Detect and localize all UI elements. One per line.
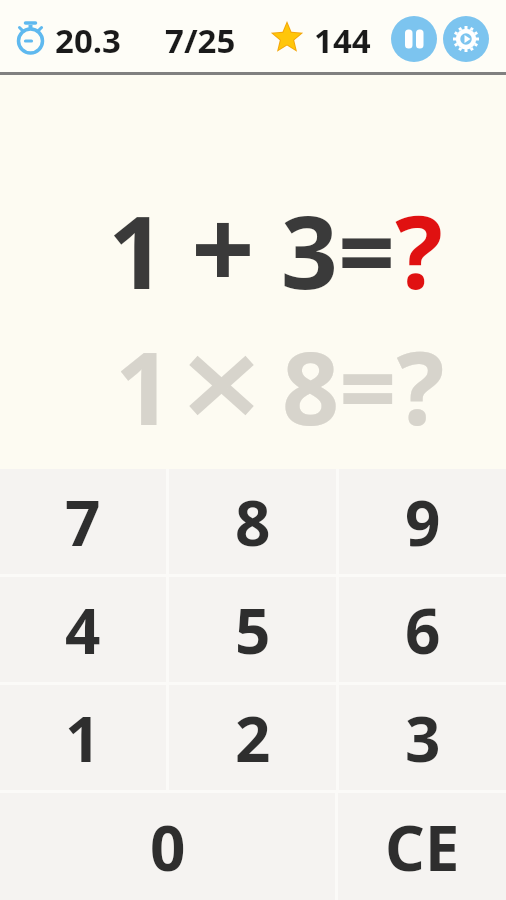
staticText: 7 [65, 480, 101, 564]
button[interactable]: CE [338, 793, 506, 900]
button[interactable]: 3 [339, 685, 506, 790]
button[interactable]: 2 [169, 685, 336, 790]
staticText: 9 [405, 480, 441, 564]
staticText: CE [385, 805, 460, 889]
staticText: 2 [235, 696, 271, 780]
staticText: 4 [65, 588, 101, 672]
staticText: 8=? [282, 318, 445, 454]
button[interactable] [443, 16, 489, 62]
button[interactable] [391, 16, 437, 62]
button[interactable]: 9 [339, 469, 506, 574]
staticText: 1 [115, 318, 173, 454]
staticText: 7/25 [165, 18, 236, 63]
staticText: 8 [235, 480, 271, 564]
button[interactable]: 6 [339, 577, 506, 682]
staticText: 1 [65, 696, 101, 780]
staticText: 0 [150, 805, 186, 889]
staticText: 5 [235, 588, 271, 672]
staticText: 3 [405, 696, 441, 780]
button[interactable]: 0 [0, 793, 335, 900]
button[interactable]: 8 [169, 469, 336, 574]
button[interactable]: 5 [169, 577, 336, 682]
button[interactable]: 1 [0, 685, 166, 790]
staticText: 1 + 3=? [108, 170, 443, 321]
staticText: 6 [405, 588, 441, 672]
staticText: 20.3 [55, 18, 121, 63]
button[interactable]: 7 [0, 469, 166, 574]
staticText: 144 [314, 18, 371, 63]
button[interactable]: 4 [0, 577, 166, 682]
